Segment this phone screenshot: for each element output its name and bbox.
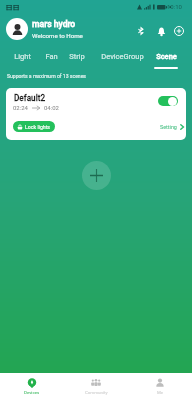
button[interactable]: Lock lights xyxy=(13,121,55,132)
staticText: Fan xyxy=(45,52,58,61)
staticText: 10:10 xyxy=(167,3,182,10)
button[interactable]: Scene enabled xyxy=(158,96,178,106)
staticText: Scene xyxy=(156,52,177,61)
button[interactable]: Strip xyxy=(64,52,90,74)
staticText: DeviceGroup xyxy=(101,52,144,61)
staticText: mars hydro xyxy=(32,19,76,29)
button[interactable]: Fan xyxy=(39,52,63,74)
staticText: Devices xyxy=(24,390,40,395)
button[interactable]: Community xyxy=(64,373,128,400)
button[interactable]: Light xyxy=(8,52,36,74)
button[interactable]: Add scene xyxy=(82,161,111,190)
button[interactable]: DeviceGroup xyxy=(98,52,146,74)
staticText: Welcome to Home xyxy=(32,32,83,39)
button[interactable]: Profile xyxy=(6,18,28,40)
button[interactable]: Setting xyxy=(160,124,185,130)
button[interactable]: Bluetooth xyxy=(133,23,149,39)
staticText: Default2 xyxy=(14,93,46,103)
staticText: 02:24 xyxy=(13,104,28,111)
staticText: Community xyxy=(85,390,108,395)
staticText: Lock lights xyxy=(25,124,51,130)
button[interactable]: Me xyxy=(128,373,192,400)
button[interactable]: Devices xyxy=(0,373,64,400)
button[interactable]: Default2 xyxy=(6,88,186,140)
staticText: Setting xyxy=(160,124,177,130)
staticText: Supports a maximum of 13 scenes xyxy=(7,73,86,79)
staticText: Me xyxy=(157,390,164,395)
staticText: 04:02 xyxy=(44,104,59,111)
button[interactable]: Notifications xyxy=(153,23,169,39)
staticText: Strip xyxy=(69,52,85,61)
button[interactable]: Scene xyxy=(151,52,181,74)
button[interactable]: Add device xyxy=(171,23,187,39)
staticText: Light xyxy=(14,52,31,61)
